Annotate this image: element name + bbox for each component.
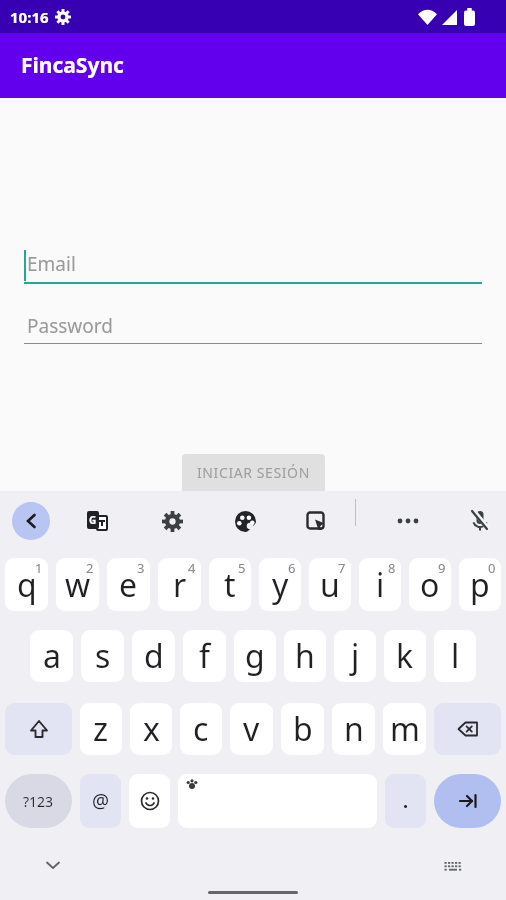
button[interactable] [468, 509, 492, 533]
staticText: 10:16 [10, 7, 49, 27]
button[interactable]: b [281, 703, 324, 755]
staticText: 5 [238, 559, 246, 577]
button[interactable] [434, 774, 501, 828]
staticText: j [351, 634, 360, 678]
button[interactable]: Password [24, 304, 482, 344]
staticText: Email [27, 251, 76, 277]
button[interactable]: v [230, 703, 273, 755]
button[interactable]: k [384, 630, 426, 682]
button[interactable] [12, 502, 50, 540]
button[interactable] [45, 860, 61, 870]
staticText: t [224, 563, 236, 607]
button[interactable]: INICIAR SESIÓN [182, 454, 325, 491]
button[interactable]: c [180, 703, 222, 755]
staticText: 9 [438, 559, 446, 577]
staticText: o [420, 563, 440, 607]
button[interactable]: u [309, 558, 351, 611]
staticText: 4 [188, 559, 196, 577]
button[interactable]: Email [24, 244, 482, 284]
staticText: ?123 [23, 792, 54, 811]
button[interactable]: ?123 [5, 774, 72, 828]
button[interactable]: m [383, 703, 426, 755]
button[interactable] [396, 509, 420, 533]
button[interactable]: h [284, 630, 326, 682]
button[interactable]: w [56, 558, 99, 611]
staticText: b [293, 707, 313, 751]
staticText: G [89, 513, 97, 527]
button[interactable]: . [385, 774, 426, 828]
button[interactable]: o [409, 558, 451, 611]
staticText: x [143, 707, 160, 751]
staticText: u [320, 563, 340, 607]
staticText: s [95, 634, 111, 678]
staticText: d [144, 634, 164, 678]
button[interactable] [305, 509, 329, 533]
button[interactable]: q [5, 558, 48, 611]
button[interactable]: i [359, 558, 401, 611]
staticText: v [243, 707, 260, 751]
staticText: m [390, 707, 420, 751]
button[interactable]: s [81, 630, 124, 682]
staticText: 1 [35, 559, 43, 577]
button[interactable]: p [459, 558, 501, 611]
button[interactable]: l [434, 630, 476, 682]
staticText: 2 [86, 559, 94, 577]
button[interactable]: j [334, 630, 376, 682]
button[interactable]: x [130, 703, 172, 755]
staticText: n [344, 707, 364, 751]
staticText: INICIAR SESIÓN [197, 463, 310, 482]
button[interactable] [5, 703, 72, 755]
button[interactable] [233, 509, 257, 533]
button[interactable] [160, 509, 184, 533]
staticText: k [396, 634, 414, 678]
staticText: g [245, 634, 265, 678]
button[interactable]: g [234, 630, 276, 682]
staticText: 3 [137, 559, 145, 577]
staticText: f [199, 634, 211, 678]
button[interactable]: G [85, 509, 109, 533]
button[interactable] [178, 774, 377, 828]
staticText: z [93, 707, 109, 751]
staticText: 8 [388, 559, 396, 577]
button[interactable]: d [132, 630, 175, 682]
staticText: w [65, 563, 91, 607]
staticText: q [17, 563, 37, 607]
button[interactable]: y [259, 558, 301, 611]
button[interactable]: t [209, 558, 251, 611]
staticText: r [173, 563, 187, 607]
button[interactable]: @ [80, 774, 121, 828]
staticText: @ [92, 788, 110, 814]
button[interactable]: z [80, 703, 122, 755]
staticText: e [119, 563, 138, 607]
staticText: 0 [488, 559, 496, 577]
staticText: l [451, 634, 460, 678]
staticText: y [272, 563, 289, 607]
staticText: 7 [338, 559, 346, 577]
staticText: Password [27, 313, 113, 339]
button[interactable]: r [158, 558, 201, 611]
staticText: 6 [288, 559, 296, 577]
staticText: p [470, 563, 490, 607]
button[interactable]: f [183, 630, 226, 682]
staticText: i [376, 563, 385, 607]
button[interactable] [129, 774, 170, 828]
staticText: FincaSync [21, 51, 124, 80]
button[interactable]: n [332, 703, 375, 755]
staticText: . [403, 789, 409, 814]
button[interactable] [434, 703, 501, 755]
button[interactable]: a [30, 630, 73, 682]
staticText: h [295, 634, 315, 678]
button[interactable]: e [107, 558, 150, 611]
button[interactable] [444, 861, 462, 873]
staticText: c [193, 707, 209, 751]
staticText: a [43, 634, 61, 678]
